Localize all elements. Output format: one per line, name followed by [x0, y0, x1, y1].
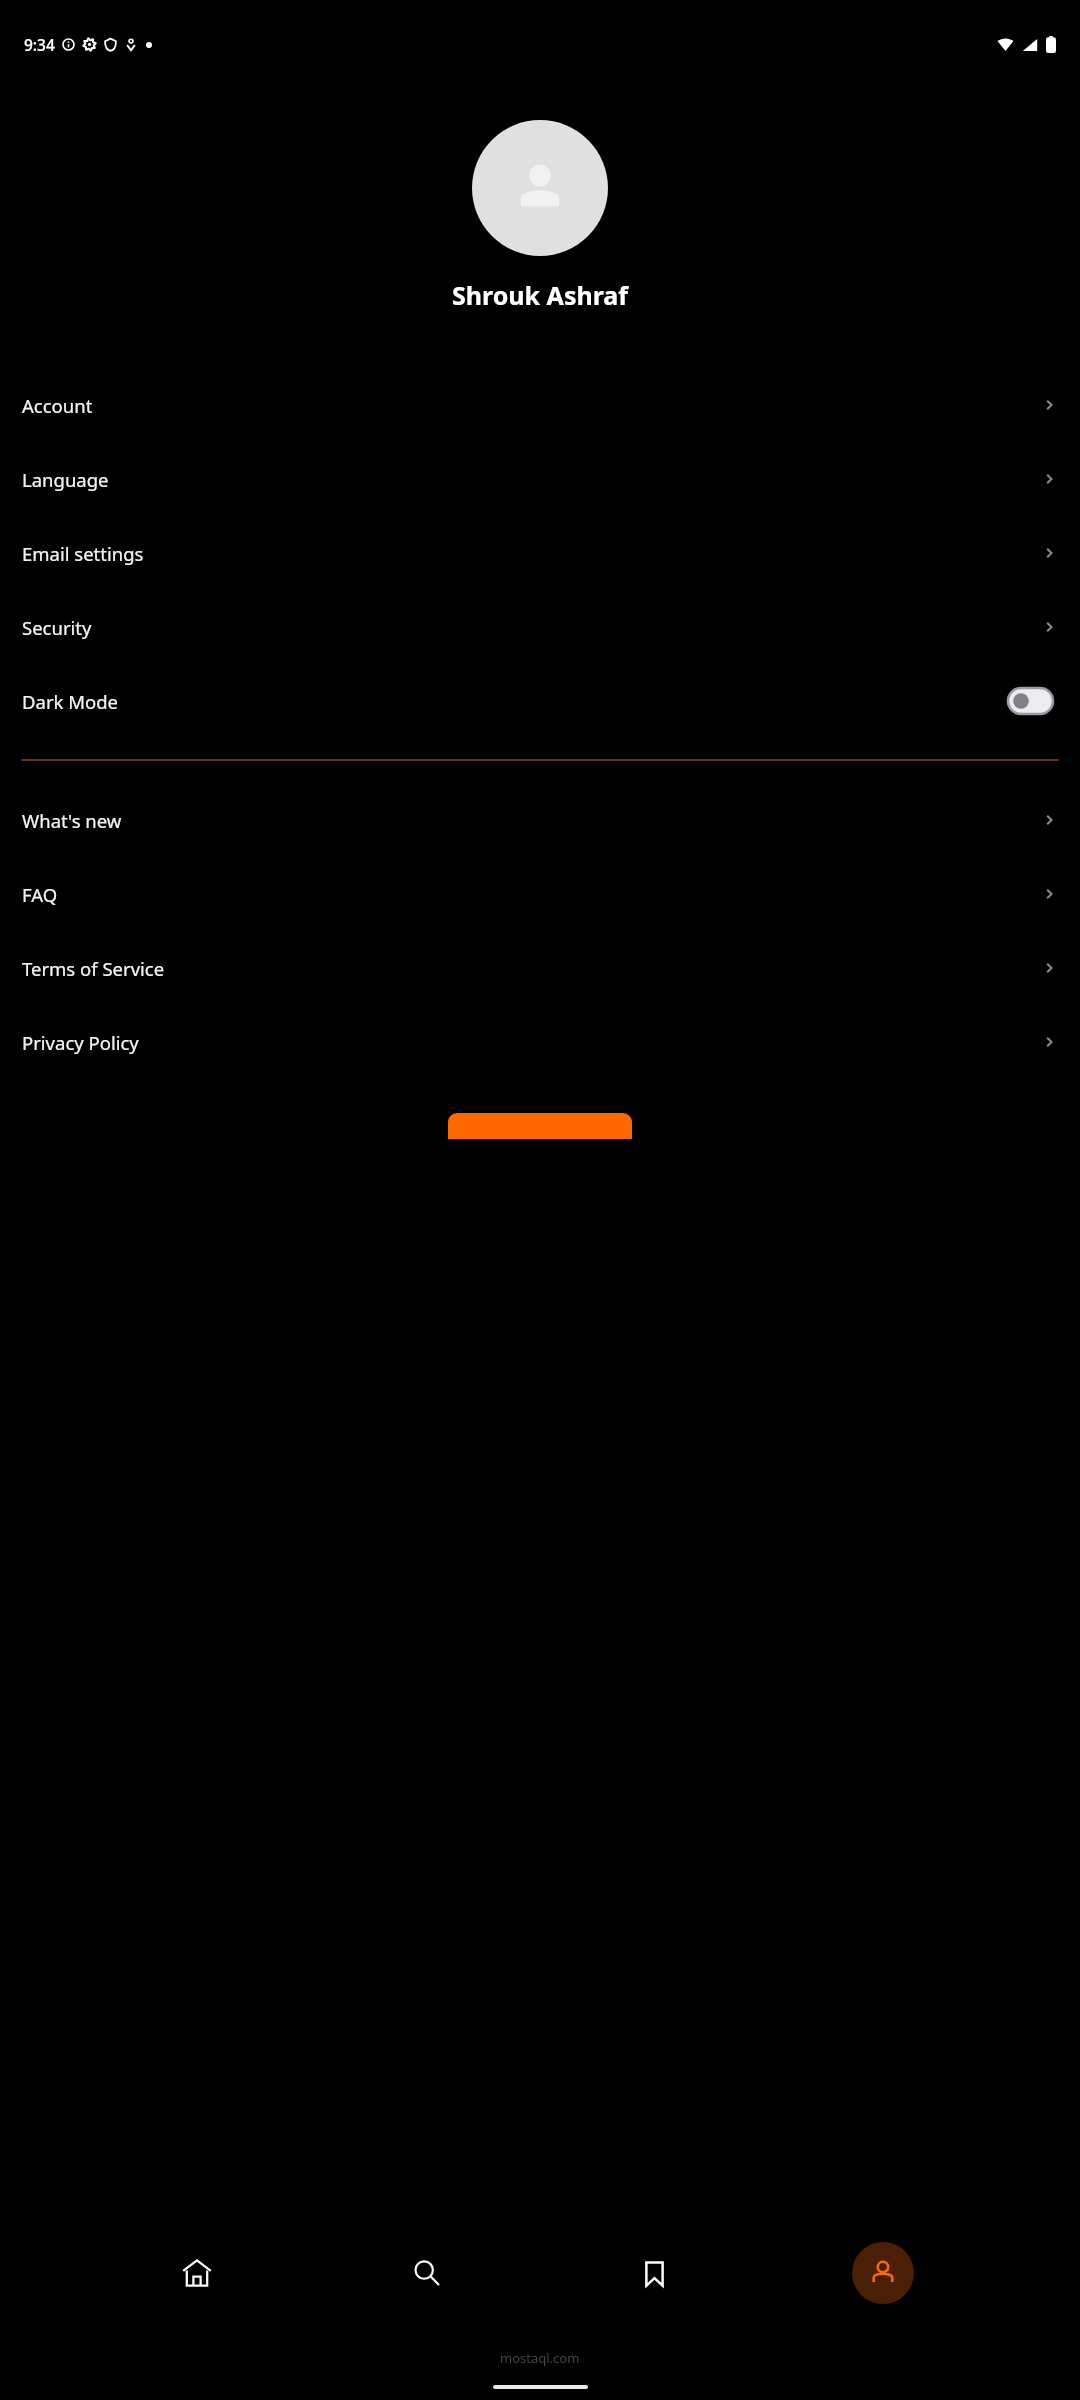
staticText: Language	[22, 467, 109, 492]
staticText: Terms of Service	[22, 956, 165, 981]
button[interactable]: FAQ	[0, 857, 1080, 931]
button[interactable]: Terms of Service	[0, 931, 1080, 1005]
staticText: Account	[22, 393, 93, 418]
button[interactable]: What's new	[0, 783, 1080, 857]
staticText: Privacy Policy	[22, 1030, 139, 1055]
button[interactable]: Logout	[448, 1113, 632, 1139]
staticText: Shrouk Ashraf	[0, 278, 1080, 312]
staticText: 9:34	[24, 34, 55, 55]
button[interactable]: Profile photo	[472, 120, 608, 256]
button[interactable]: Search	[395, 2242, 457, 2304]
button[interactable]: Security	[0, 590, 1080, 664]
button[interactable]: Home	[166, 2242, 228, 2304]
button[interactable]: Language	[0, 442, 1080, 516]
button[interactable]: Account	[0, 368, 1080, 442]
button[interactable]: Profile	[852, 2242, 914, 2304]
staticText: What's new	[22, 808, 122, 833]
button[interactable]: Privacy Policy	[0, 1005, 1080, 1079]
staticText: Email settings	[22, 541, 144, 566]
staticText: mostaql.com	[500, 2349, 580, 2367]
button[interactable]: Bookmarks	[623, 2242, 685, 2304]
staticText: Security	[22, 615, 92, 640]
button[interactable]: Email settings	[0, 516, 1080, 590]
staticText: FAQ	[22, 882, 58, 907]
staticText: Dark Mode	[22, 689, 118, 714]
button[interactable]: Dark Mode	[0, 664, 1080, 738]
